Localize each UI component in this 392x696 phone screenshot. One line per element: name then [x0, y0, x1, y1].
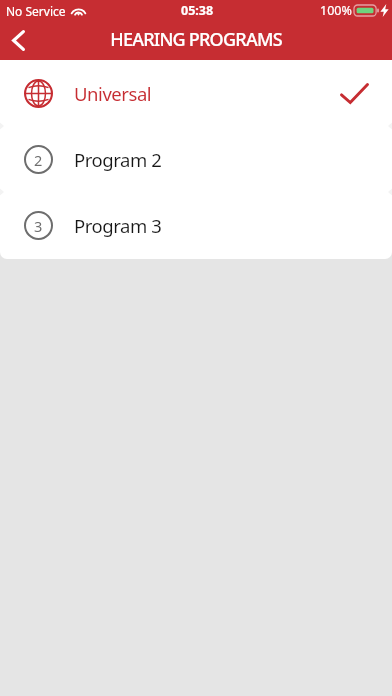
- button[interactable]: Back: [0, 18, 40, 62]
- button[interactable]: 3: [0, 192, 392, 258]
- button[interactable]: Universal: [0, 60, 392, 126]
- staticText: 05:38: [181, 2, 214, 19]
- staticText: 3: [34, 216, 43, 236]
- staticText: Universal: [74, 81, 152, 106]
- staticText: No Service: [6, 3, 66, 19]
- staticText: 100%: [320, 2, 352, 19]
- staticText: Program 3: [74, 213, 162, 238]
- staticText: 2: [34, 150, 43, 170]
- staticText: Program 2: [74, 147, 162, 172]
- button[interactable]: 2: [0, 126, 392, 192]
- staticText: HEARING PROGRAMS: [110, 27, 282, 52]
